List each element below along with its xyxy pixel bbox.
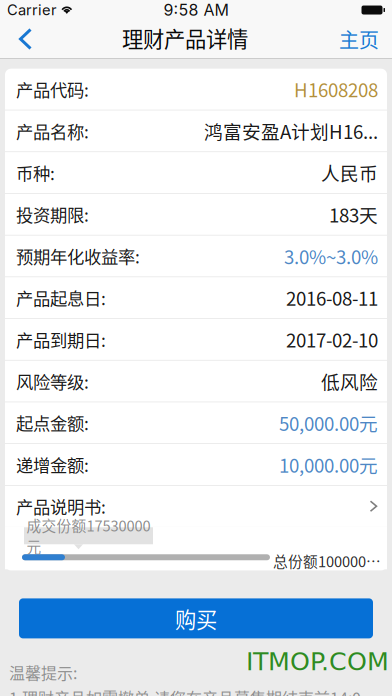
button[interactable]: 主页 xyxy=(322,20,392,58)
staticText: 购买 xyxy=(175,603,217,634)
staticText: 1.理财产品如需撤单,请您在产品募集期结束前14:00之前操作 xyxy=(9,686,383,696)
staticText: 理财产品详情 xyxy=(122,23,248,53)
staticText: 起点金额: xyxy=(16,410,89,435)
staticText: 183天 xyxy=(329,201,378,228)
staticText: 币种: xyxy=(16,160,55,185)
button[interactable]: 产品说明书: xyxy=(5,486,387,527)
staticText: 递增金额: xyxy=(16,452,89,477)
staticText: 成交份额17530000元 xyxy=(26,514,150,557)
staticText: 低风险 xyxy=(321,368,378,395)
staticText: 50,000.00元 xyxy=(279,409,378,436)
staticText: 温馨提示: xyxy=(9,661,77,684)
staticText: 产品代码: xyxy=(16,77,89,102)
button[interactable]: 购买 xyxy=(19,598,373,638)
staticText: 总份额100000000.00 xyxy=(273,550,387,571)
staticText: 3.0%~3.0% xyxy=(284,242,378,269)
staticText: ITMOP.COM xyxy=(246,647,389,676)
staticText: 鸿富安盈A计划H16... xyxy=(204,117,378,144)
staticText: 产品起息日: xyxy=(16,285,106,310)
staticText: 产品到期日: xyxy=(16,327,106,352)
staticText: 预期年化收益率: xyxy=(16,243,140,269)
staticText: 产品名称: xyxy=(16,118,89,143)
staticText: 投资期限: xyxy=(16,202,89,227)
staticText: 产品说明书: xyxy=(16,494,106,519)
staticText: 2016-08-11 xyxy=(286,284,378,311)
staticText: 10,000.00元 xyxy=(279,451,378,478)
staticText: 主页 xyxy=(339,24,379,53)
staticText: Carrier xyxy=(7,1,57,19)
staticText: 风险等级: xyxy=(16,369,89,394)
button[interactable]: Back xyxy=(0,20,62,58)
staticText: H1608208 xyxy=(294,76,378,103)
staticText: 2017-02-10 xyxy=(286,326,378,353)
staticText: 人民币 xyxy=(321,159,378,186)
staticText: 9:58 AM xyxy=(163,0,228,20)
